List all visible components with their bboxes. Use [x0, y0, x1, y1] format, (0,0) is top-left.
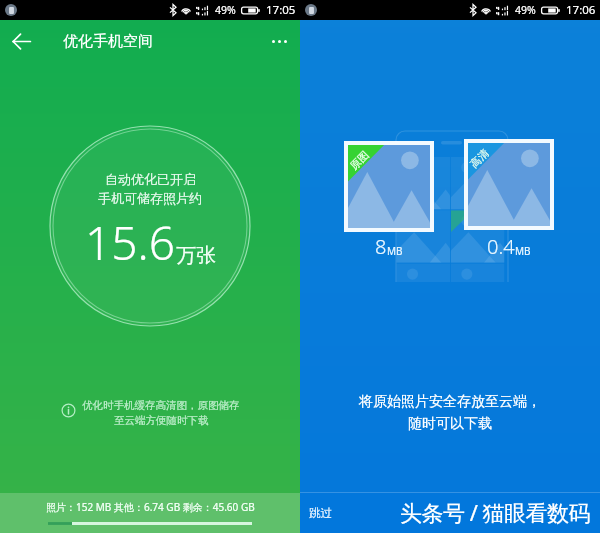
- staticText: 优化手机空间: [63, 32, 153, 51]
- staticText: 头条号 / 猫眼看数码: [400, 497, 591, 527]
- staticText: MB: [515, 244, 531, 258]
- button[interactable]: More options: [258, 20, 300, 62]
- staticText: 0.4: [487, 233, 515, 260]
- staticText: 将原始照片安全存放至云端，: [359, 393, 541, 411]
- staticText: 17:05: [266, 2, 296, 18]
- staticText: 跳过: [309, 506, 332, 520]
- staticText: 万张: [176, 243, 216, 268]
- staticText: 49%: [215, 3, 236, 17]
- staticText: 高清: [468, 146, 491, 170]
- staticText: 至云端方便随时下载: [114, 414, 209, 427]
- staticText: 15.6: [85, 211, 176, 274]
- staticText: 原图: [348, 148, 371, 172]
- staticText: 17:06: [566, 2, 596, 18]
- staticText: 自动优化已开启: [105, 171, 196, 187]
- staticText: MB: [387, 244, 403, 258]
- staticText: 照片：152 MB 其他：6.74 GB 剩余：45.60 GB: [46, 500, 255, 514]
- staticText: 手机可储存照片约: [98, 190, 202, 206]
- button[interactable]: Back: [0, 20, 42, 62]
- staticText: 优化时手机缓存高清图，原图储存: [82, 399, 240, 412]
- button[interactable]: 跳过: [303, 499, 338, 527]
- button[interactable]: 原图: [348, 145, 430, 228]
- staticText: 49%: [515, 3, 536, 17]
- button[interactable]: 高清: [468, 143, 550, 226]
- staticText: 随时可以下载: [408, 415, 492, 433]
- staticText: 8: [375, 233, 387, 260]
